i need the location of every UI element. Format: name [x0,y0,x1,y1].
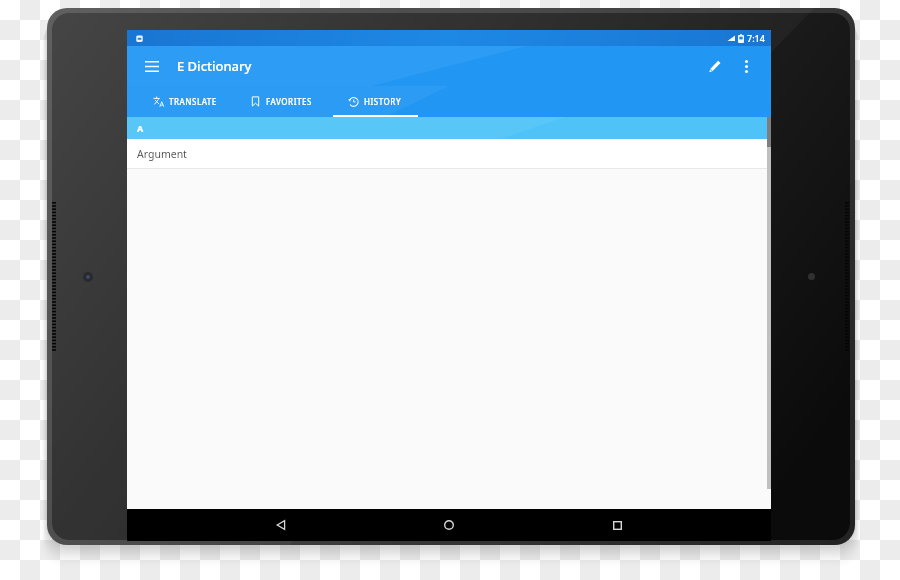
button[interactable]: Open navigation drawer [139,53,165,79]
button[interactable]: Recent apps [597,511,637,539]
button[interactable]: FAVORITES [233,86,329,117]
button[interactable]: TRANSLATE [137,86,233,117]
staticText: Argument [137,147,187,161]
staticText: E Dictionary [177,57,252,75]
button[interactable]: Argument [127,139,771,169]
button[interactable]: Back [261,511,301,539]
staticText: A [137,122,144,134]
button[interactable]: More options [733,53,759,79]
staticText: HISTORY [364,96,402,107]
button[interactable]: Edit [701,53,727,79]
staticText: TRANSLATE [169,96,217,107]
button[interactable]: HISTORY [329,86,421,117]
staticText: 7:14 [747,32,765,44]
button[interactable]: Home [429,511,469,539]
staticText: FAVORITES [266,96,312,107]
